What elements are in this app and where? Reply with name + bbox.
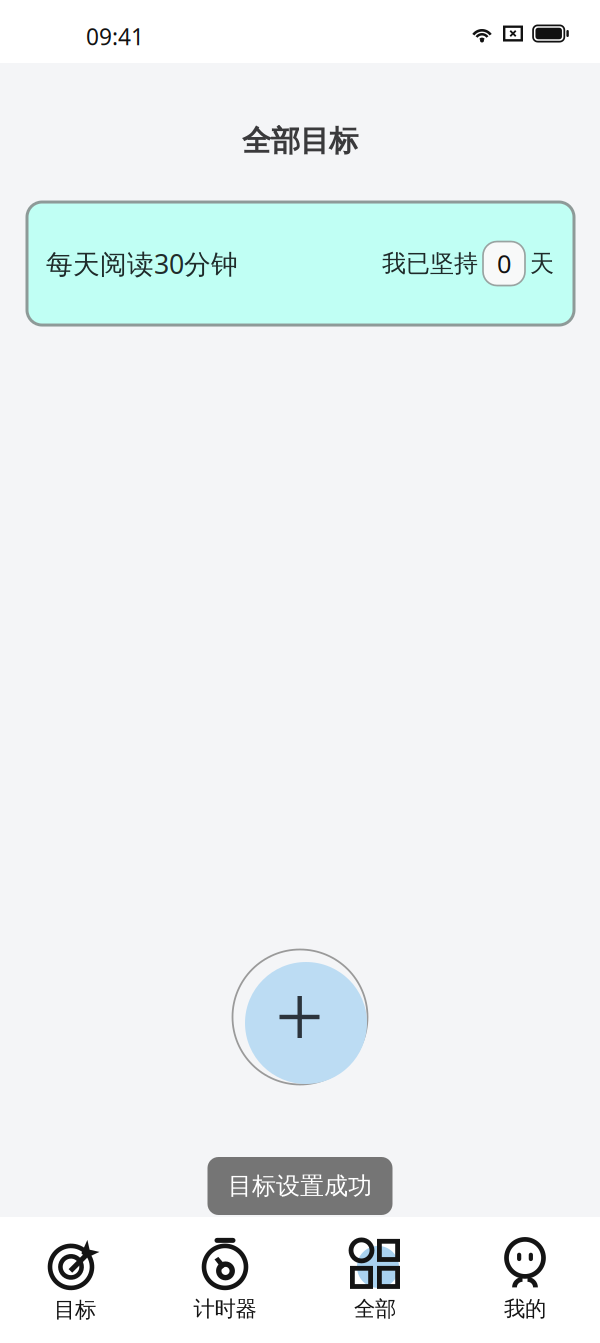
- staticText: 我的: [504, 1296, 546, 1322]
- staticText: 天: [530, 249, 554, 278]
- button[interactable]: 每天阅读30分钟: [27, 202, 574, 325]
- button[interactable]: Add goal: [233, 950, 379, 1096]
- staticText: 全部目标: [242, 123, 358, 159]
- button[interactable]: 目标: [0, 1217, 150, 1343]
- staticText: 每天阅读30分钟: [46, 246, 238, 281]
- staticText: 目标: [54, 1297, 96, 1323]
- button[interactable]: 全部: [300, 1217, 450, 1343]
- button[interactable]: 目标设置成功: [207, 1157, 392, 1215]
- staticText: 我已坚持: [382, 249, 478, 278]
- staticText: 0: [497, 247, 511, 280]
- staticText: 计时器: [193, 1296, 256, 1322]
- button[interactable]: 我的: [450, 1217, 600, 1343]
- staticText: 目标设置成功: [228, 1171, 372, 1201]
- staticText: 全部: [354, 1296, 396, 1322]
- staticText: 09:41: [86, 21, 144, 51]
- button[interactable]: 计时器: [150, 1217, 300, 1343]
